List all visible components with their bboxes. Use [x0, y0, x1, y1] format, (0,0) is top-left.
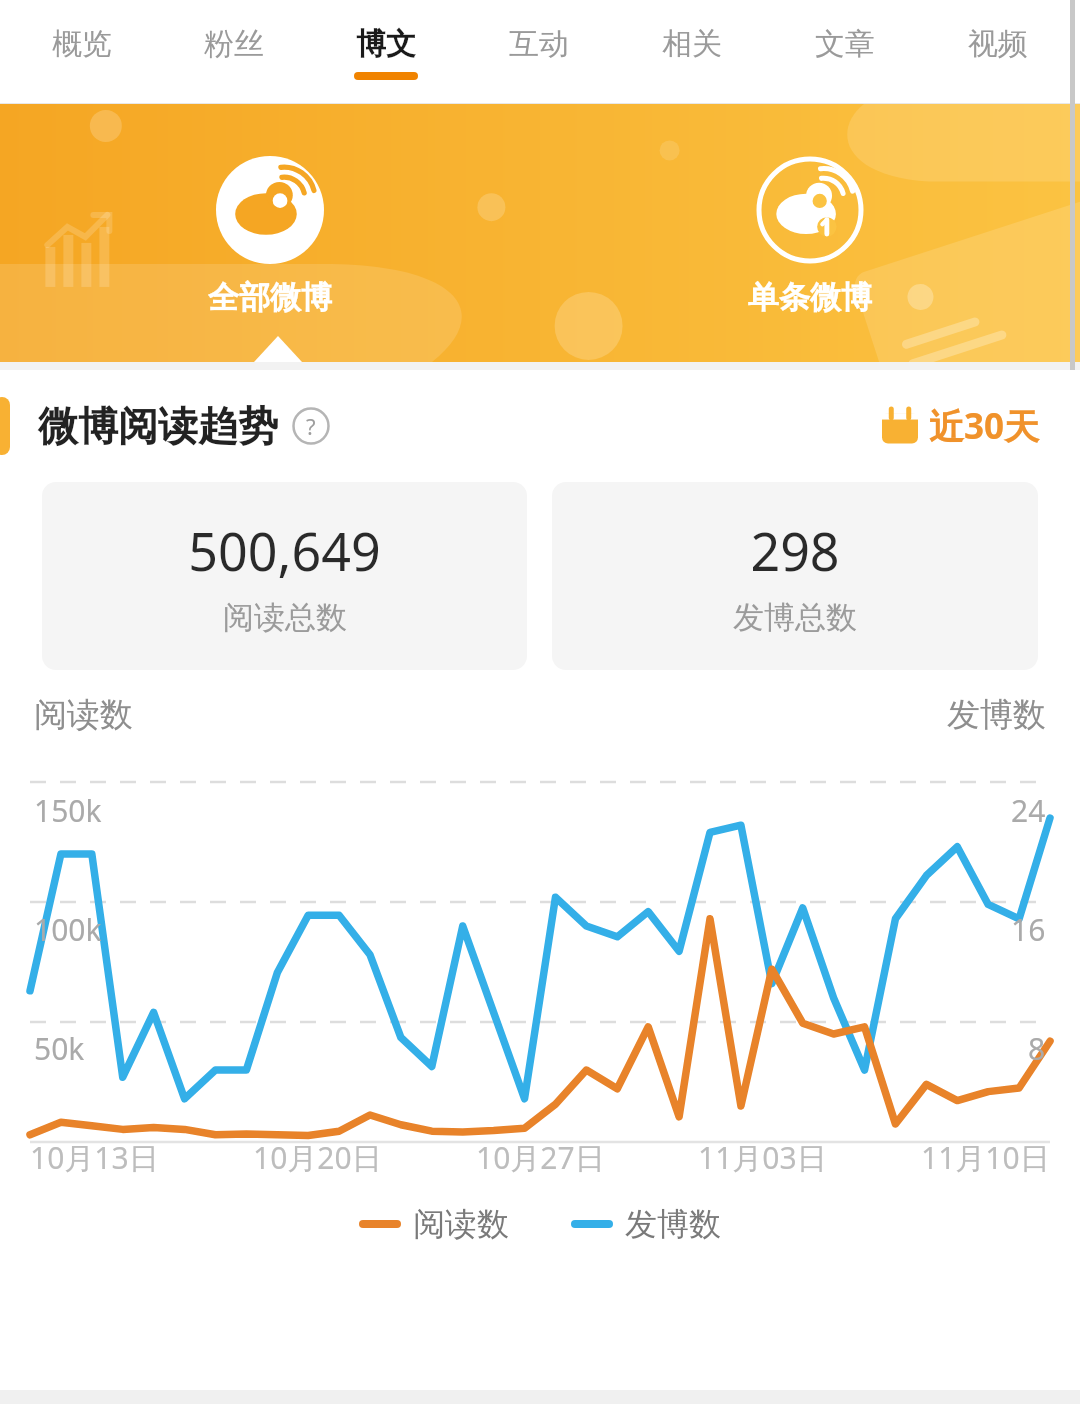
- staticText: 150k: [34, 790, 102, 831]
- staticText: 发博数: [625, 1204, 721, 1244]
- button[interactable]: 相关: [615, 0, 768, 104]
- staticText: 100k: [34, 909, 102, 950]
- staticText: 10月20日: [253, 1137, 382, 1178]
- staticText: 298: [750, 515, 840, 586]
- staticText: 阅读总数: [223, 598, 347, 637]
- staticText: 博文: [356, 25, 416, 63]
- staticText: 发博总数: [733, 598, 857, 637]
- staticText: 概览: [52, 25, 112, 63]
- staticText: 发博数: [947, 694, 1046, 736]
- button[interactable]: 概览: [6, 0, 158, 104]
- staticText: 近30天: [929, 402, 1040, 450]
- staticText: 11月03日: [698, 1137, 827, 1178]
- staticText: 8: [1028, 1028, 1046, 1069]
- staticText: 16: [1011, 909, 1046, 950]
- button[interactable]: 单条微博: [540, 104, 1080, 362]
- button[interactable]: 帮助: [292, 407, 330, 445]
- staticText: 单条微博: [748, 278, 872, 317]
- staticText: 文章: [815, 25, 875, 63]
- other: 单条微博: [756, 156, 864, 264]
- button[interactable]: 近30天: [875, 396, 1046, 456]
- button[interactable]: 全部微博: [0, 104, 540, 362]
- staticText: 24: [1011, 790, 1046, 831]
- button[interactable]: 298: [552, 482, 1038, 670]
- staticText: 阅读数: [34, 694, 133, 736]
- staticText: 粉丝: [204, 25, 264, 63]
- other: 全部微博: [216, 156, 324, 264]
- staticText: 微博阅读趋势: [38, 401, 278, 451]
- button[interactable]: 发博数: [567, 1200, 725, 1248]
- staticText: 500,649: [188, 515, 381, 586]
- staticText: ?: [306, 411, 316, 441]
- button[interactable]: 视频: [921, 0, 1074, 104]
- button[interactable]: 博文: [310, 0, 462, 104]
- staticText: 全部微博: [208, 278, 332, 317]
- button[interactable]: 互动: [462, 0, 615, 104]
- staticText: 11月10日: [921, 1137, 1050, 1178]
- button[interactable]: 500,649: [42, 482, 527, 670]
- button[interactable]: 文章: [768, 0, 921, 104]
- staticText: 阅读数: [413, 1204, 509, 1244]
- staticText: 相关: [662, 25, 722, 63]
- staticText: 互动: [509, 25, 569, 63]
- button[interactable]: 粉丝: [158, 0, 310, 104]
- button[interactable]: 阅读数: [355, 1200, 513, 1248]
- staticText: 50k: [34, 1028, 85, 1069]
- staticText: 10月13日: [30, 1137, 159, 1178]
- staticText: 视频: [968, 25, 1028, 63]
- staticText: 10月27日: [476, 1137, 605, 1178]
